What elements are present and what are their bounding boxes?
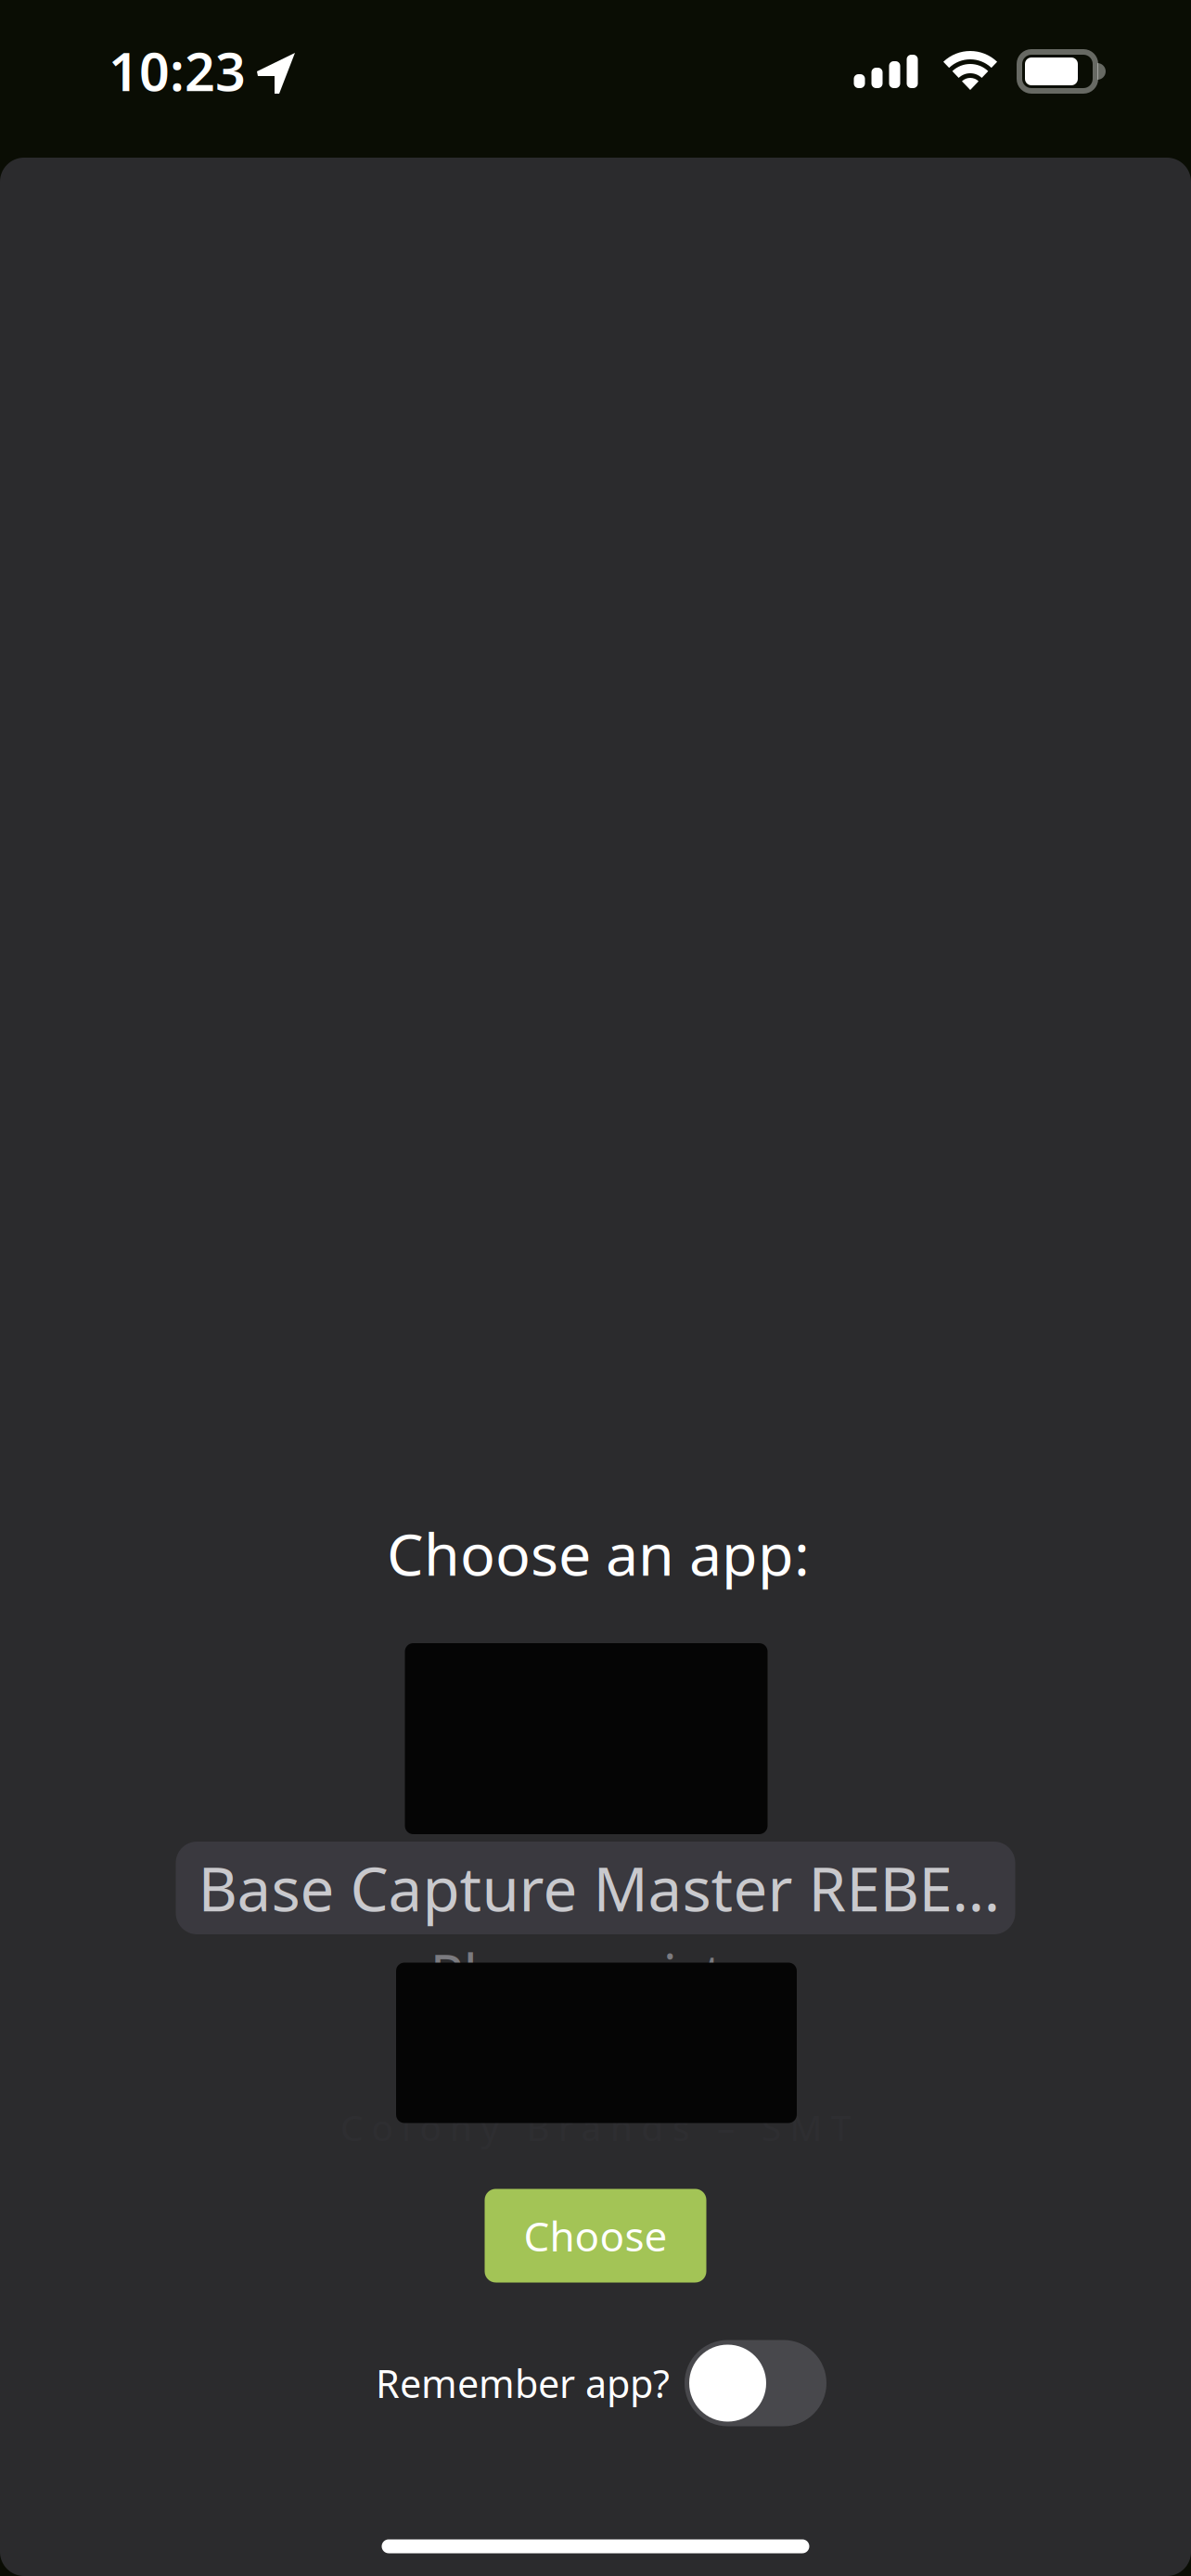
button[interactable]: Choose bbox=[485, 2189, 706, 2283]
staticText: Colony Brands – SMT bbox=[340, 2103, 851, 2151]
staticText: 10:23 bbox=[109, 35, 246, 106]
button[interactable]: Base Capture Master REBE… bbox=[176, 1842, 1015, 1934]
staticText: Choose bbox=[524, 2209, 667, 2263]
staticText: Remember app? bbox=[376, 2358, 670, 2409]
staticText: Pharmacist bbox=[430, 1936, 724, 2010]
staticText: Choose an app: bbox=[387, 1515, 810, 1592]
button[interactable]: Remember app? bbox=[376, 2340, 826, 2426]
staticText: Base Capture Master REBE… bbox=[198, 1848, 1000, 1928]
